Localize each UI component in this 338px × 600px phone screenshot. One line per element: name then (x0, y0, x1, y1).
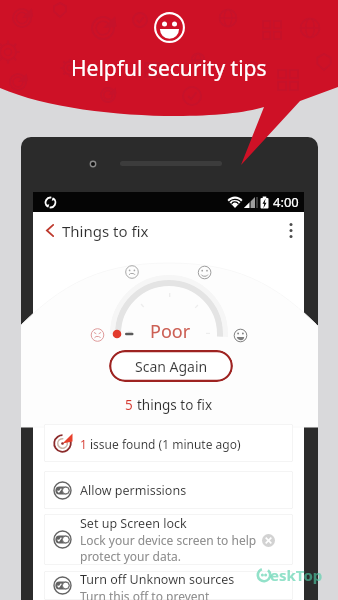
staticText: Turn this off to prevent (80, 588, 210, 600)
staticText: Helpful security tips (71, 54, 267, 83)
staticText: 5 (125, 396, 137, 414)
button[interactable]: Allow permissions (44, 471, 293, 509)
staticText: things to fix (137, 396, 213, 414)
staticText: eskTop (270, 565, 323, 585)
staticText: Poor (150, 319, 191, 344)
button[interactable]: More options (278, 212, 304, 249)
staticText: Things to fix (62, 221, 149, 241)
staticText: Allow permissions (80, 482, 187, 499)
button[interactable]: Dismiss (258, 530, 278, 550)
staticText: Scan Again (135, 357, 208, 376)
button[interactable]: Scan Again (109, 350, 233, 382)
staticText: protect your data. (80, 548, 181, 564)
staticText: issue found (1 minute ago) (90, 436, 241, 452)
button[interactable]: Back (39, 212, 61, 249)
staticText: 1 (80, 436, 90, 452)
staticText: Turn off Unknown sources (80, 571, 235, 588)
button[interactable]: Set up Screen lock (44, 514, 293, 565)
staticText: Set up Screen lock (80, 515, 187, 532)
button[interactable]: Turn off Unknown sources (44, 571, 293, 600)
staticText: 4:00 (273, 193, 299, 211)
button[interactable]: 1 (44, 424, 293, 462)
staticText: Lock your device screen to help (80, 532, 257, 548)
